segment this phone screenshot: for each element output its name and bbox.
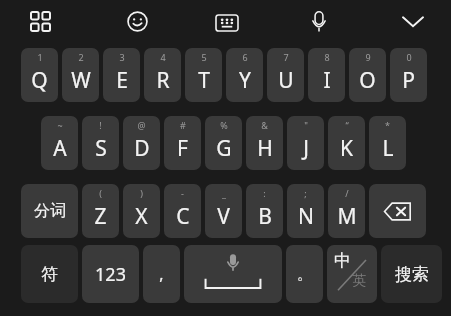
button[interactable]: , bbox=[143, 245, 180, 303]
staticText: : bbox=[263, 187, 266, 199]
button[interactable]: 0 bbox=[390, 48, 427, 102]
staticText: J bbox=[303, 134, 309, 163]
button[interactable]: Menu bbox=[27, 8, 53, 34]
staticText: _ bbox=[222, 187, 226, 199]
button[interactable]: 。 bbox=[286, 245, 323, 303]
staticText: / bbox=[345, 187, 349, 199]
staticText: 8 bbox=[324, 51, 330, 63]
button[interactable]: ) bbox=[123, 184, 160, 238]
staticText: 123 bbox=[95, 262, 126, 287]
staticText: 英 bbox=[352, 272, 366, 290]
staticText: “ bbox=[345, 119, 349, 131]
staticText: 符 bbox=[41, 264, 58, 285]
button[interactable]: 8 bbox=[308, 48, 345, 102]
staticText: V bbox=[217, 202, 230, 231]
staticText: % bbox=[220, 119, 228, 131]
button[interactable]: Keyboard layout bbox=[214, 10, 240, 36]
staticText: Q bbox=[31, 66, 48, 95]
staticText: ( bbox=[99, 187, 102, 199]
button[interactable]: 6 bbox=[226, 48, 263, 102]
button[interactable]: ( bbox=[82, 184, 119, 238]
button[interactable]: Space bbox=[184, 245, 282, 303]
staticText: * bbox=[385, 119, 390, 131]
button[interactable]: % bbox=[205, 116, 242, 170]
staticText: 6 bbox=[242, 51, 248, 63]
staticText: X bbox=[135, 202, 148, 231]
button[interactable]: 搜索 bbox=[381, 245, 442, 303]
staticText: I bbox=[323, 66, 331, 95]
button[interactable]: _ bbox=[205, 184, 242, 238]
button[interactable]: 分词 bbox=[21, 184, 78, 238]
staticText: 3 bbox=[119, 51, 125, 63]
button[interactable]: @ bbox=[123, 116, 160, 170]
staticText: 分词 bbox=[34, 201, 66, 221]
staticText: A bbox=[53, 134, 67, 163]
button[interactable]: * bbox=[369, 116, 406, 170]
button[interactable]: 5 bbox=[185, 48, 222, 102]
button[interactable]: 123 bbox=[82, 245, 139, 303]
staticText: 中 bbox=[334, 250, 351, 271]
staticText: 。 bbox=[297, 265, 312, 284]
staticText: 9 bbox=[365, 51, 371, 63]
staticText: # bbox=[180, 119, 186, 131]
staticText: ~ bbox=[57, 119, 63, 131]
staticText: & bbox=[261, 119, 268, 131]
button[interactable]: & bbox=[246, 116, 283, 170]
staticText: M bbox=[337, 202, 357, 231]
button[interactable]: " bbox=[287, 116, 324, 170]
staticText: O bbox=[359, 66, 376, 95]
staticText: Y bbox=[239, 66, 251, 95]
staticText: W bbox=[71, 66, 91, 95]
staticText: G bbox=[216, 134, 232, 163]
staticText: L bbox=[382, 134, 394, 163]
staticText: E bbox=[116, 66, 128, 95]
staticText: B bbox=[258, 202, 272, 231]
staticText: C bbox=[176, 202, 190, 231]
staticText: " bbox=[304, 119, 308, 131]
staticText: @ bbox=[137, 119, 146, 131]
staticText: , bbox=[159, 263, 164, 285]
button[interactable]: ! bbox=[82, 116, 119, 170]
staticText: 搜索 bbox=[395, 264, 429, 285]
staticText: T bbox=[198, 66, 210, 95]
staticText: ; bbox=[304, 187, 307, 199]
staticText: U bbox=[278, 66, 294, 95]
staticText: 0 bbox=[406, 51, 412, 63]
button[interactable]: Hide keyboard bbox=[400, 8, 426, 34]
staticText: ! bbox=[99, 119, 102, 131]
staticText: 1 bbox=[37, 51, 43, 63]
staticText: D bbox=[134, 134, 150, 163]
staticText: 5 bbox=[201, 51, 207, 63]
button[interactable]: ; bbox=[287, 184, 324, 238]
button[interactable]: 9 bbox=[349, 48, 386, 102]
button[interactable]: 7 bbox=[267, 48, 304, 102]
button[interactable]: “ bbox=[328, 116, 365, 170]
button[interactable]: ~ bbox=[41, 116, 78, 170]
staticText: K bbox=[340, 134, 353, 163]
button[interactable]: Emoji bbox=[123, 7, 151, 35]
staticText: 2 bbox=[78, 51, 84, 63]
staticText: P bbox=[402, 66, 415, 95]
staticText: - bbox=[181, 187, 184, 199]
staticText: R bbox=[156, 66, 170, 95]
staticText: S bbox=[95, 134, 107, 163]
button[interactable]: 3 bbox=[103, 48, 140, 102]
button[interactable]: Voice input bbox=[306, 8, 332, 34]
button[interactable]: Backspace bbox=[369, 184, 426, 238]
staticText: 4 bbox=[160, 51, 166, 63]
button[interactable]: 2 bbox=[62, 48, 99, 102]
staticText: ) bbox=[140, 187, 143, 199]
button[interactable]: - bbox=[164, 184, 201, 238]
button[interactable]: 符 bbox=[21, 245, 78, 303]
button[interactable]: : bbox=[246, 184, 283, 238]
button[interactable]: 4 bbox=[144, 48, 181, 102]
staticText: 7 bbox=[283, 51, 289, 63]
staticText: Z bbox=[94, 202, 107, 231]
button[interactable]: Chinese English toggle bbox=[327, 245, 377, 303]
staticText: F bbox=[177, 134, 188, 163]
button[interactable]: / bbox=[328, 184, 365, 238]
staticText: H bbox=[257, 134, 273, 163]
button[interactable]: # bbox=[164, 116, 201, 170]
button[interactable]: 1 bbox=[21, 48, 58, 102]
staticText: N bbox=[298, 202, 314, 231]
